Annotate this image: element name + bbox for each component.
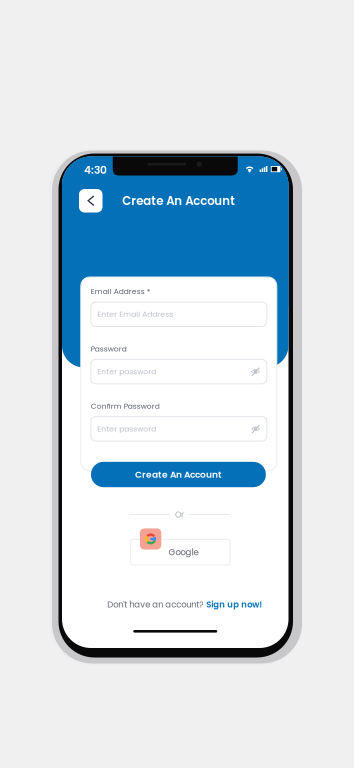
staticText: Enter Email Address [97, 309, 173, 319]
button[interactable]: Create An Account [91, 462, 266, 487]
staticText: Create An Account [122, 193, 235, 209]
staticText: 4:30 [84, 162, 107, 177]
staticText: Confirm Password [91, 401, 160, 411]
button[interactable]: Back [79, 189, 102, 212]
staticText: Or [175, 509, 184, 520]
staticText: Enter password [97, 424, 156, 434]
button[interactable]: Sign up now! [206, 599, 262, 610]
staticText: Don't have an account? [107, 599, 203, 610]
staticText: Email Address * [91, 286, 151, 297]
staticText: Enter password [97, 366, 156, 377]
staticText: Sign up now! [206, 599, 262, 610]
staticText: Password [91, 344, 127, 354]
staticText: Google [168, 546, 198, 558]
button[interactable]: Google [131, 528, 230, 565]
staticText: Create An Account [135, 468, 222, 481]
